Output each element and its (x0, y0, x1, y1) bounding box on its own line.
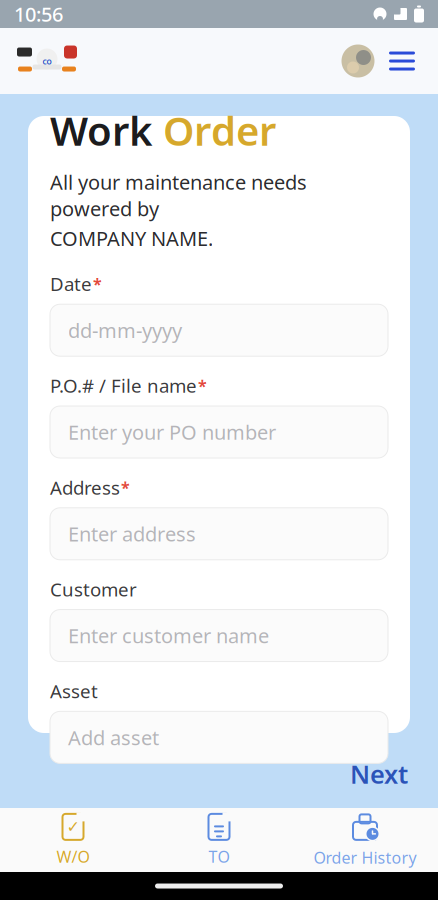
staticText: CO (42, 58, 51, 66)
button[interactable]: Next (340, 751, 418, 797)
staticText: dd-mm-yyyy (68, 317, 182, 343)
staticText: 10:56 (14, 1, 63, 27)
staticText: Enter your PO number (68, 419, 276, 445)
staticText: Work (50, 104, 163, 157)
button[interactable]: Menu (380, 39, 424, 83)
staticText: * (121, 477, 130, 498)
staticText: P.O.# / File name (50, 373, 197, 398)
staticText: COMPANY NAME. (50, 225, 213, 251)
staticText: Address (50, 475, 120, 500)
staticText: TO (208, 846, 229, 867)
staticText: Order History (313, 847, 416, 868)
staticText: Next (350, 757, 408, 791)
staticText: * (93, 273, 102, 294)
button[interactable]: Order History (292, 808, 438, 872)
button[interactable]: ✓ (0, 808, 146, 872)
staticText: Enter address (68, 520, 196, 547)
button[interactable]: Enter your PO number (50, 406, 388, 458)
button[interactable]: Home (14, 39, 80, 83)
staticText: Add asset (68, 724, 159, 751)
staticText: W/O (56, 846, 89, 867)
staticText: All your maintenance needs powered by (50, 169, 307, 222)
staticText: Order (163, 104, 276, 157)
staticText: ✓ (66, 818, 79, 836)
button[interactable]: Add asset (50, 711, 388, 763)
button[interactable]: Profile (336, 39, 380, 83)
button[interactable]: TO (146, 808, 292, 872)
staticText: Date (50, 271, 92, 296)
staticText: Customer (50, 577, 137, 602)
button[interactable]: Enter customer name (50, 610, 388, 662)
staticText: Enter customer name (68, 622, 269, 649)
button[interactable]: dd-mm-yyyy (50, 304, 388, 356)
staticText: Asset (50, 679, 98, 703)
button[interactable]: Enter address (50, 508, 388, 560)
staticText: * (198, 375, 207, 396)
